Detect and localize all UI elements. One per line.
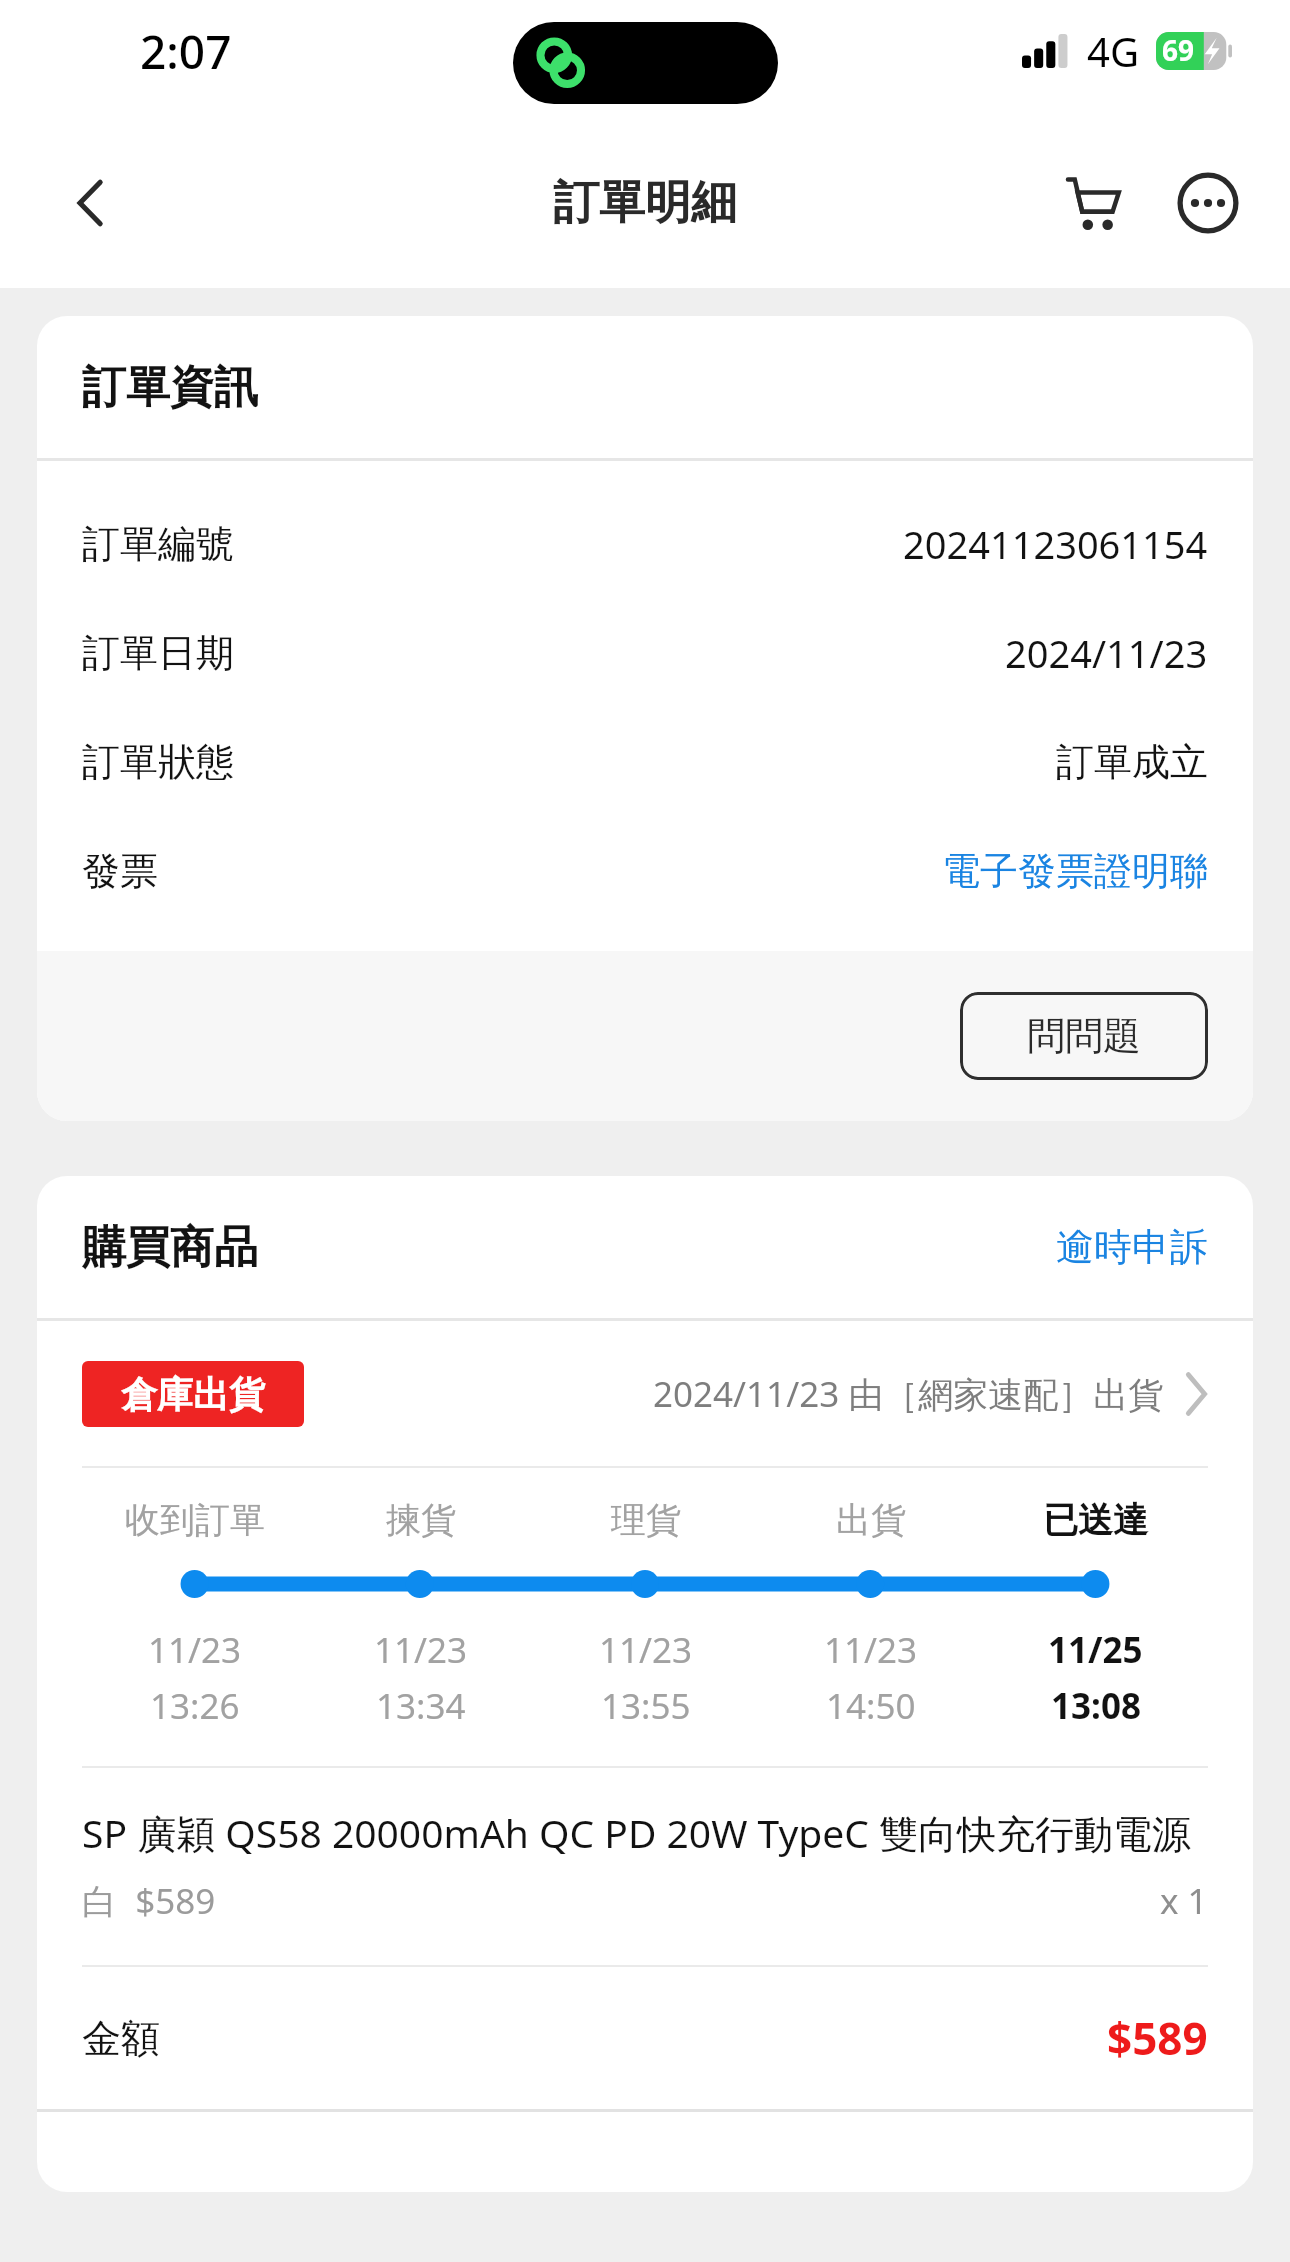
staticText: 4G	[1087, 24, 1139, 78]
button[interactable]: 發票	[82, 816, 1208, 925]
staticText: 13:08	[1051, 1682, 1141, 1730]
staticText: 問問題	[1027, 1012, 1141, 1060]
staticText: 訂單資訊	[82, 360, 258, 415]
button[interactable]: 倉庫出貨	[82, 1321, 1208, 1466]
staticText: 13:34	[376, 1682, 466, 1730]
staticText: 20241123061154	[903, 518, 1208, 570]
staticText: 14:50	[826, 1682, 916, 1730]
staticText: 11/23	[148, 1626, 242, 1674]
staticText: 電子發票證明聯	[942, 847, 1208, 895]
staticText: 訂單成立	[1056, 738, 1208, 786]
staticText: 發票	[82, 847, 158, 895]
staticText: 11/23	[599, 1626, 693, 1674]
staticText: 訂單明細	[553, 174, 737, 232]
staticText: 揀貨	[386, 1498, 456, 1542]
staticText: 理貨	[611, 1498, 681, 1542]
staticText: 2024/11/23 由［網家速配］出貨	[653, 1370, 1164, 1418]
staticText: $589	[1107, 2008, 1208, 2068]
staticText: 2:07	[140, 20, 232, 83]
staticText: 11/25	[1048, 1626, 1143, 1674]
button[interactable]: 逾時申訴	[1056, 1223, 1208, 1271]
button[interactable]: More options	[1154, 149, 1262, 257]
staticText: 69	[1162, 31, 1195, 69]
staticText: 倉庫出貨	[121, 1372, 265, 1417]
staticText: 金額	[82, 2014, 160, 2063]
staticText: 11/23	[824, 1626, 918, 1674]
staticText: 11/23	[374, 1626, 468, 1674]
staticText: 訂單日期	[82, 629, 234, 677]
staticText: x 1	[1160, 1877, 1208, 1925]
staticText: 逾時申訴	[1056, 1223, 1208, 1271]
staticText: 購買商品	[82, 1220, 258, 1275]
staticText: 13:26	[150, 1682, 240, 1730]
button[interactable]: 問問題	[960, 992, 1208, 1080]
button[interactable]: Shopping cart	[1040, 149, 1148, 257]
button[interactable]: Back	[36, 148, 146, 258]
staticText: 13:55	[601, 1682, 691, 1730]
staticText: 白 $589	[82, 1877, 216, 1925]
staticText: 已送達	[1043, 1498, 1148, 1542]
staticText: 出貨	[836, 1498, 906, 1542]
staticText: 2024/11/23	[1005, 627, 1208, 679]
staticText: SP 廣穎 QS58 20000mAh QC PD 20W TypeC 雙向快充…	[82, 1806, 1192, 1859]
staticText: 訂單編號	[82, 520, 234, 568]
staticText: 訂單狀態	[82, 738, 234, 786]
staticText: 收到訂單	[125, 1498, 265, 1542]
